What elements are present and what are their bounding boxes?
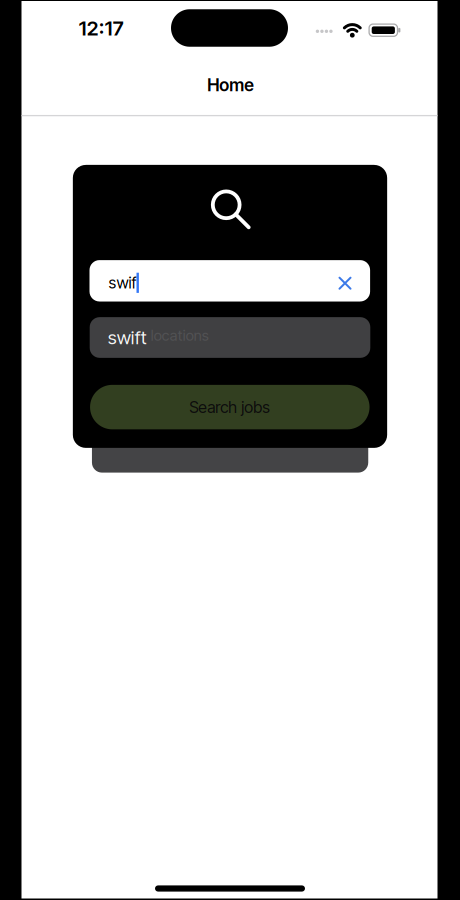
button[interactable]: Clear text <box>332 270 358 296</box>
staticText: swif <box>108 273 136 292</box>
button[interactable]: swift <box>90 317 370 358</box>
button[interactable]: Search jobs <box>90 385 370 429</box>
staticText: Search jobs <box>189 398 270 417</box>
staticText: locations <box>151 327 209 344</box>
button[interactable]: swif <box>89 260 370 301</box>
staticText: 12:17 <box>79 16 124 40</box>
staticText: Home <box>207 75 254 95</box>
staticText: swift <box>108 326 147 348</box>
